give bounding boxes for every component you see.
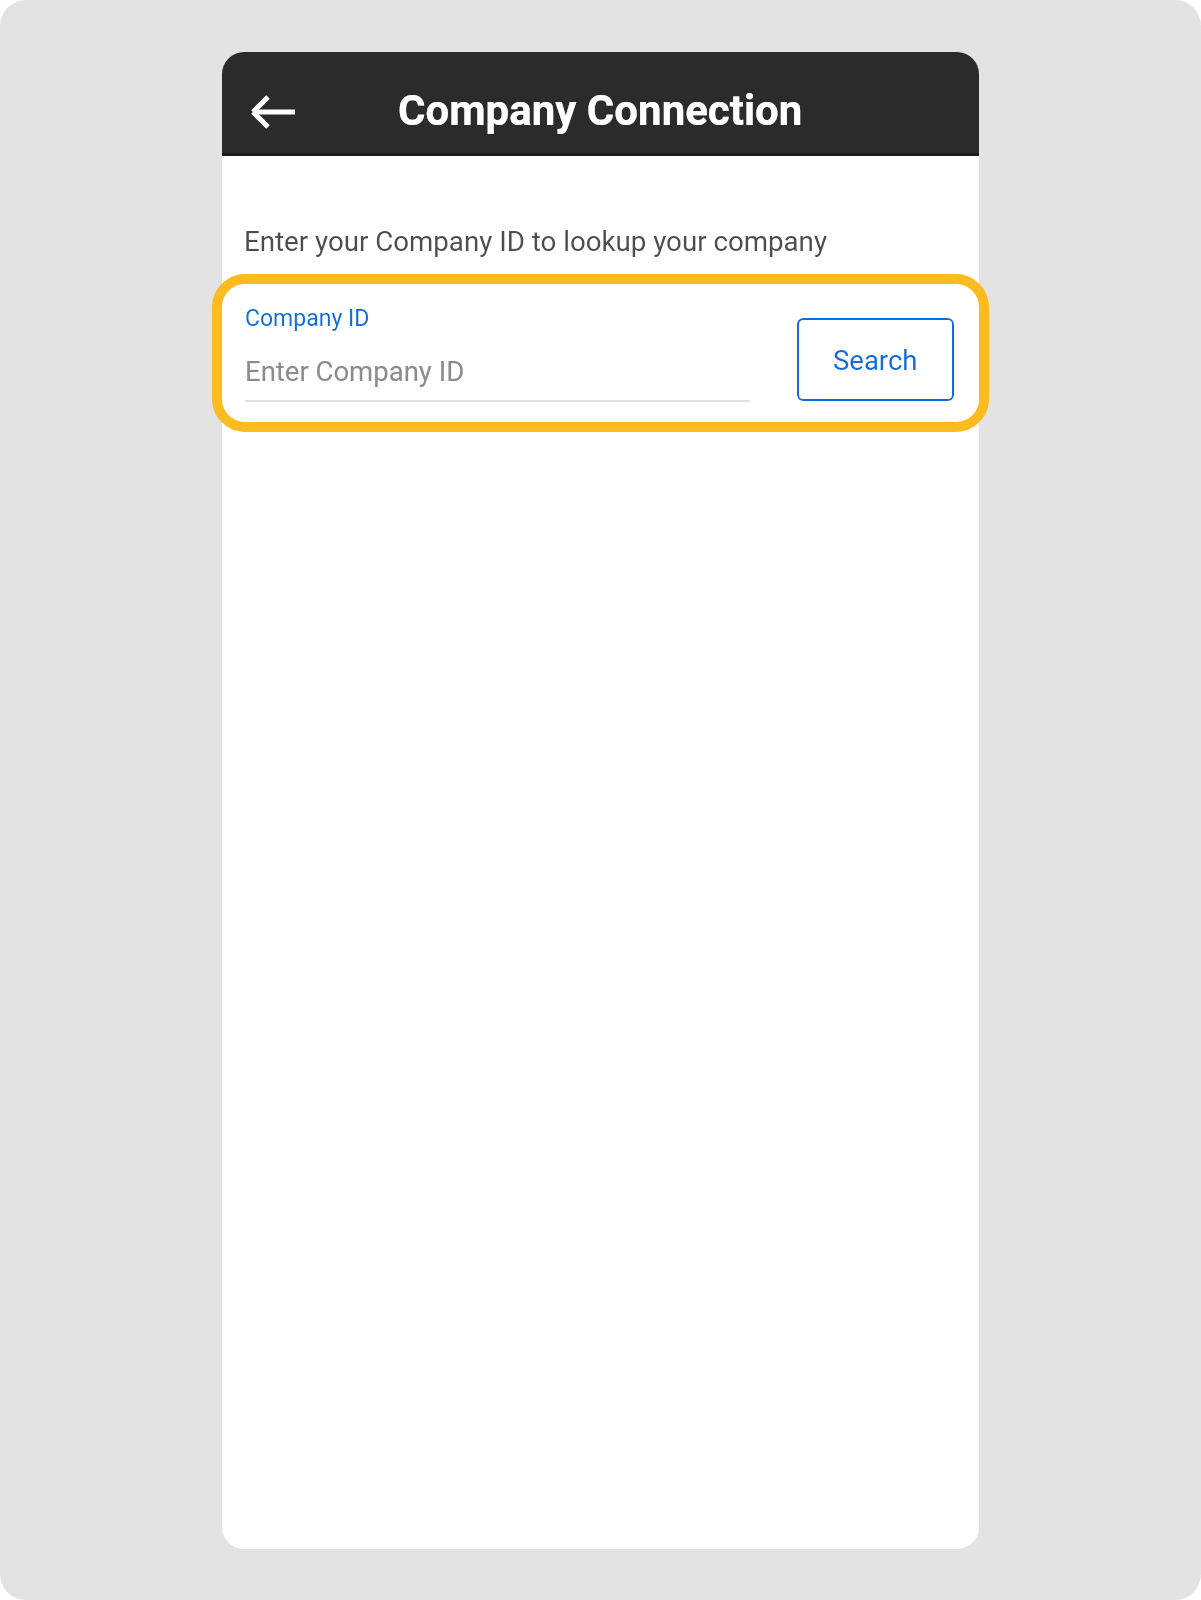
- button[interactable]: Search: [797, 318, 954, 401]
- staticText: Company ID: [245, 305, 370, 332]
- button[interactable]: Back: [227, 77, 321, 147]
- staticText: Enter your Company ID to lookup your com…: [244, 225, 827, 257]
- staticText: Search: [833, 344, 918, 376]
- button[interactable]: Company ID: [245, 300, 750, 402]
- staticText: Enter Company ID: [245, 355, 465, 387]
- staticText: Company Connection: [398, 86, 803, 135]
